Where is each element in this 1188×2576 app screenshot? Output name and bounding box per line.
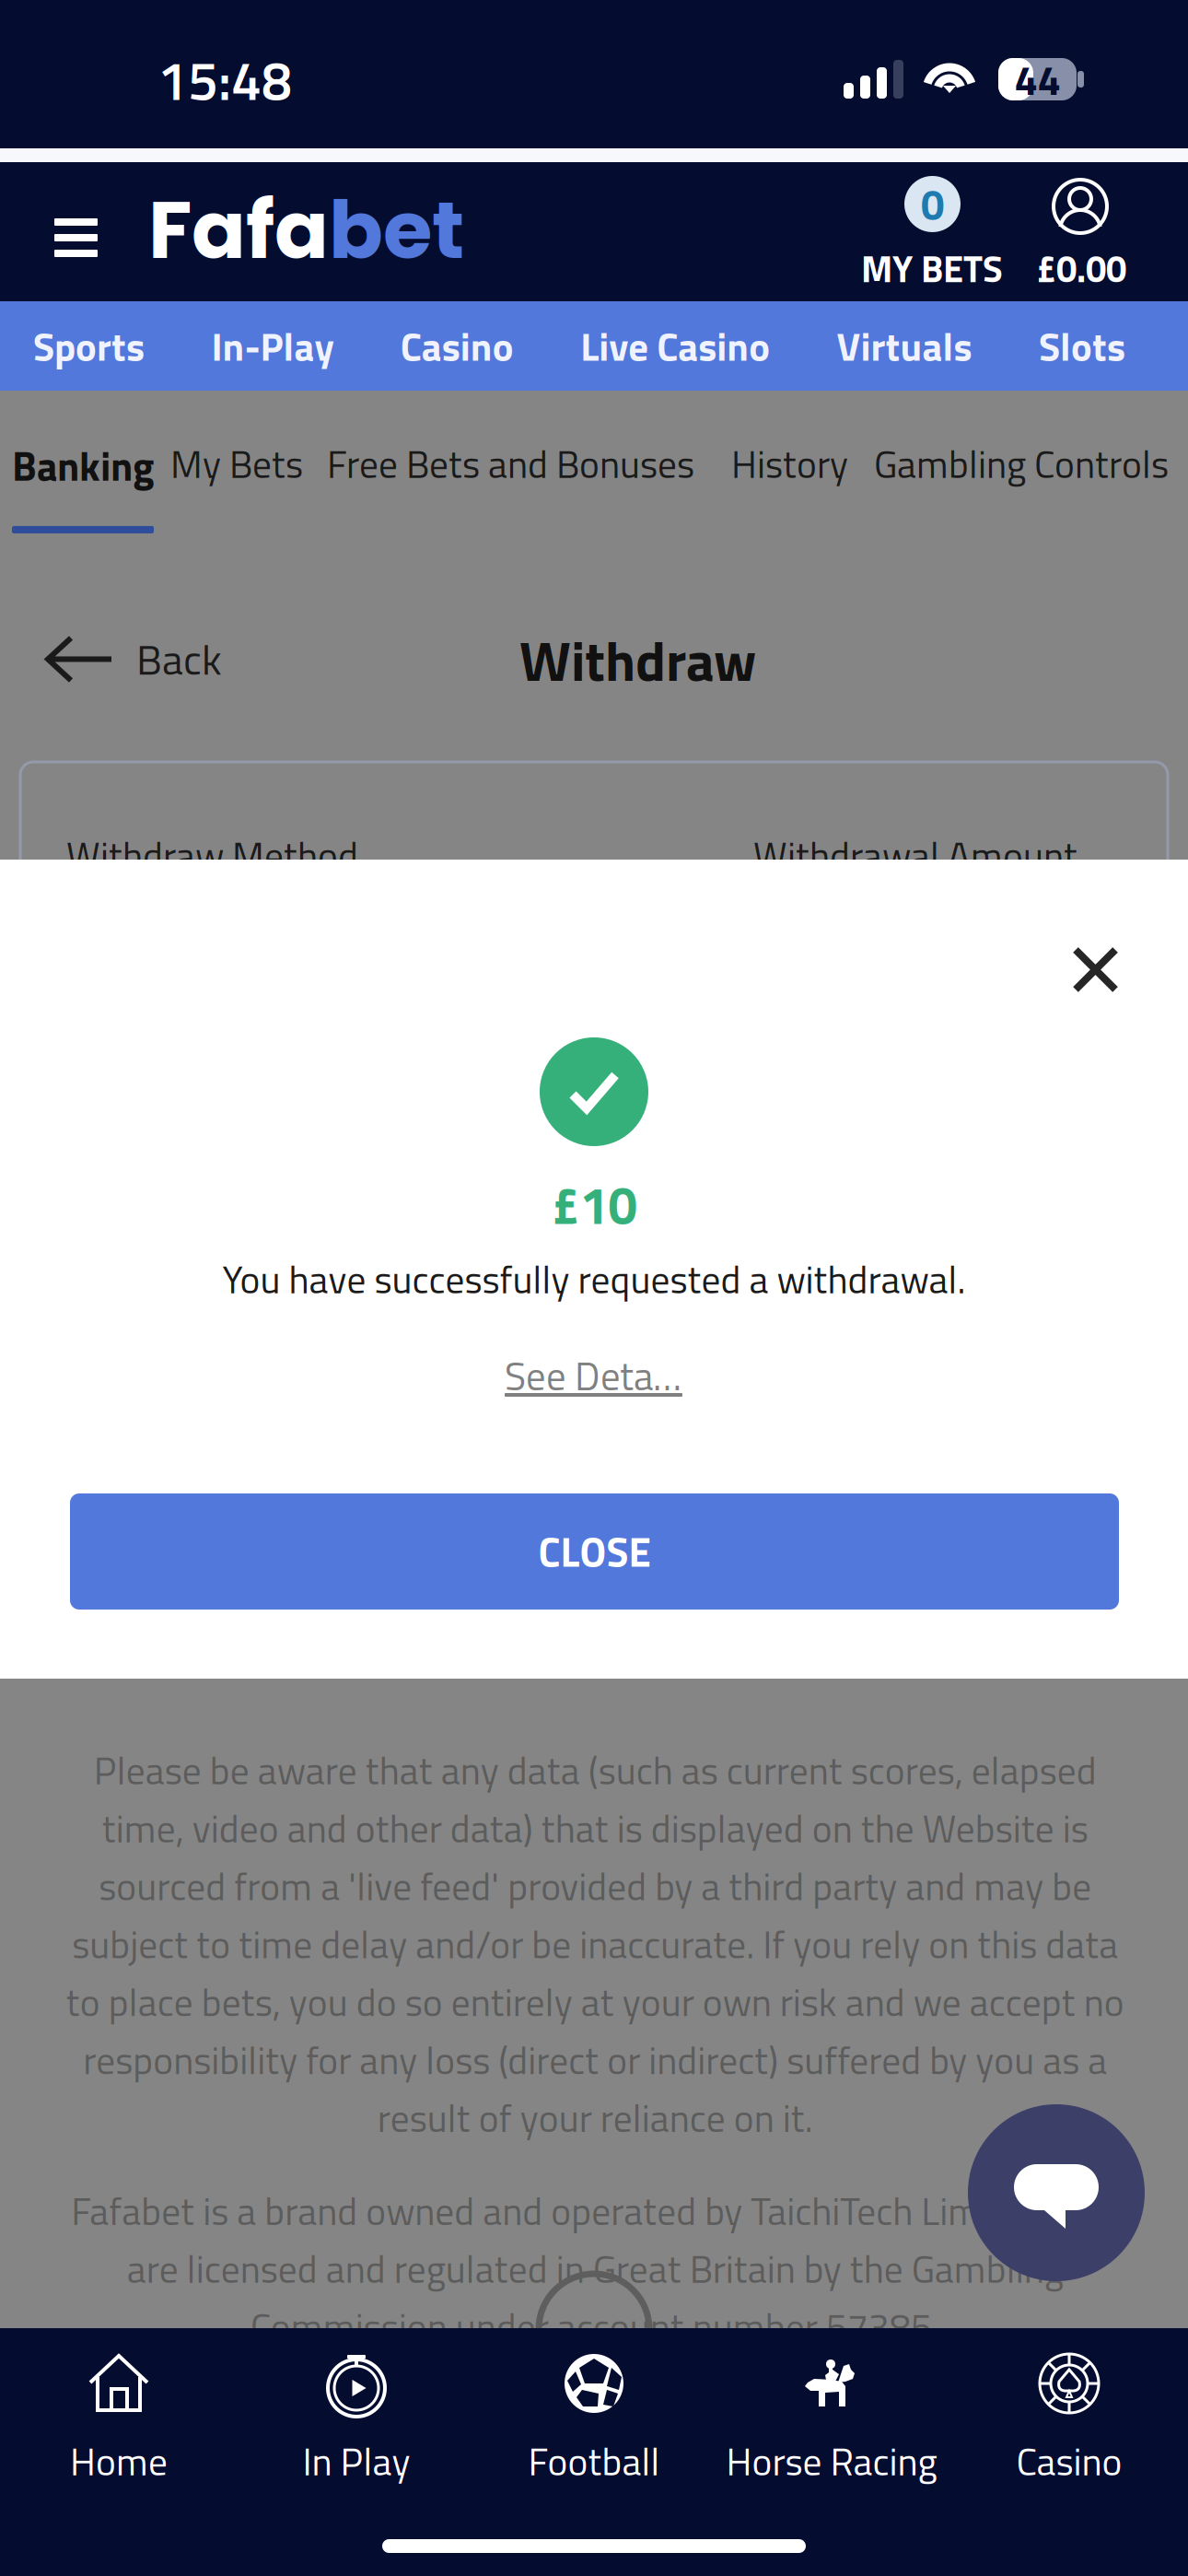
staticText: In-Play [211, 316, 334, 376]
staticText: 15:48 [157, 39, 292, 121]
staticText: 44 [1014, 47, 1060, 111]
button[interactable]: Menu [54, 218, 98, 257]
staticText: You have successfully requested a withdr… [222, 1250, 966, 1308]
staticText: £10 [551, 1165, 637, 1244]
staticText: Virtuals [837, 316, 972, 376]
button[interactable]: See Details [505, 1358, 682, 1397]
staticText: 0 [921, 172, 944, 236]
button[interactable]: Gambling Controls [874, 435, 1169, 493]
staticText: My Bets [170, 435, 303, 493]
staticText: Horse Racing [726, 2432, 937, 2490]
button[interactable]: In-Play [211, 316, 334, 376]
button[interactable]: £0.00 [1036, 162, 1130, 301]
button[interactable]: Banking [12, 435, 154, 533]
staticText: Withdraw [519, 618, 756, 702]
button[interactable]: Casino [950, 2351, 1188, 2490]
staticText: Live Casino [580, 316, 770, 376]
button[interactable]: Close [1072, 946, 1119, 993]
staticText: Fafa [148, 174, 329, 286]
staticText: CLOSE [538, 1521, 651, 1582]
button[interactable]: Sports [33, 316, 145, 376]
button[interactable]: Back [45, 627, 222, 691]
button[interactable]: Free Bets and Bonuses [327, 435, 694, 493]
staticText: Fafabet is a brand owned and operated by… [71, 2182, 1119, 2356]
button[interactable]: Fafa [148, 174, 464, 286]
staticText: Sports [33, 316, 145, 376]
staticText: Withdraw Method [66, 826, 358, 884]
staticText: bet [329, 174, 464, 286]
button[interactable]: CLOSE [70, 1493, 1119, 1610]
button[interactable]: Chat [968, 2104, 1145, 2281]
staticText: Banking [12, 435, 154, 496]
staticText: Free Bets and Bonuses [327, 435, 694, 493]
staticText: Please be aware that any data (such as c… [66, 1741, 1124, 2147]
button[interactable]: Home [0, 2351, 238, 2490]
button[interactable]: Football [475, 2351, 713, 2490]
staticText: Slots [1039, 316, 1125, 376]
staticText: Fafabet is the trading name of TaichiTec… [66, 2356, 1124, 2471]
staticText: Home [70, 2432, 168, 2490]
button[interactable]: Slots [1039, 316, 1125, 376]
staticText: Casino [1016, 2432, 1122, 2490]
button[interactable]: In Play [238, 2351, 475, 2490]
button[interactable]: Casino [400, 316, 514, 376]
button[interactable]: Horse Racing [713, 2351, 950, 2490]
staticText: History [731, 435, 848, 493]
staticText: Casino [400, 316, 514, 376]
staticText: Football [528, 2432, 660, 2490]
staticText: MY BETS [861, 240, 1003, 296]
staticText: See Details [505, 1346, 682, 1405]
staticText: Withdrawal Amount [753, 826, 1077, 884]
button[interactable]: Live Casino [580, 316, 770, 376]
staticText: Gambling Controls [874, 435, 1169, 493]
button[interactable]: Virtuals [837, 316, 972, 376]
button[interactable]: My Bets [170, 435, 303, 493]
staticText: £0.00 [1036, 240, 1126, 296]
staticText: In Play [303, 2432, 410, 2490]
staticText: Back [136, 627, 222, 691]
button[interactable]: History [731, 435, 848, 493]
button[interactable]: 0 [861, 162, 1004, 301]
